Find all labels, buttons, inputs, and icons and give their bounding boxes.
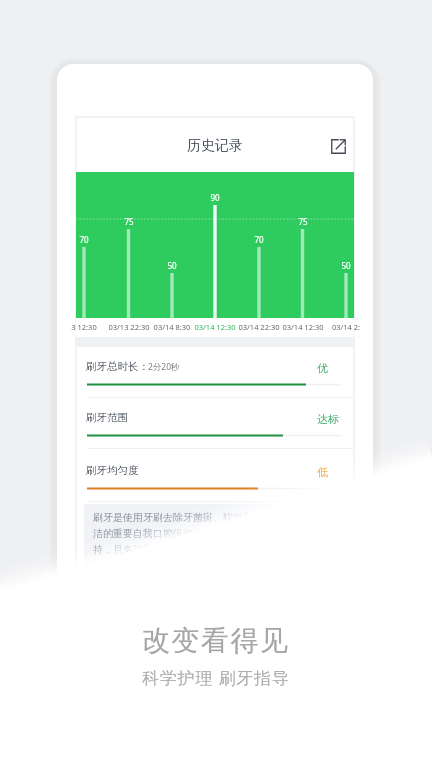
staticText: 75 [119, 216, 139, 227]
staticText: 03/14 8:30 [150, 322, 194, 332]
staticText: 改变看得见 [142, 623, 290, 658]
button[interactable]: 刷牙均匀度 [77, 451, 353, 502]
staticText: 03/13 22:30 [107, 322, 151, 332]
staticText: 70 [249, 234, 269, 245]
staticText: 刷牙总时长： [86, 360, 149, 373]
staticText: 03/14 12:30 [281, 322, 325, 332]
staticText: 刷牙均匀度 [86, 464, 139, 477]
staticText: 科学护理 刷牙指导 [142, 666, 290, 689]
staticText: 03/14 12:30 [193, 322, 237, 332]
button[interactable]: 刷牙总时长： [77, 347, 353, 398]
staticText: 90 [205, 192, 225, 203]
staticText: 达标 [317, 412, 339, 426]
staticText: 70 [74, 234, 94, 245]
staticText: 03/14 22:30 [237, 322, 281, 332]
staticText: 50 [336, 260, 356, 271]
staticText: 75 [293, 216, 313, 227]
button[interactable]: 刷牙范围 [77, 398, 353, 449]
staticText: 03/14 2: [324, 322, 368, 332]
staticText: 3 12:30 [62, 322, 106, 332]
button[interactable]: Share [328, 136, 349, 157]
staticText: 刷牙范围 [86, 411, 128, 424]
staticText: 2分20秒 [148, 361, 180, 373]
staticText: 刷牙是使用牙刷去除牙菌斑、软垢和食物残渣，保 洁的重要自我口腔保健方法，需要每天… [93, 511, 313, 556]
staticText: 历史记录 [187, 137, 243, 155]
staticText: 低 [317, 465, 328, 479]
staticText: 50 [162, 260, 182, 271]
staticText: 优 [317, 361, 328, 375]
